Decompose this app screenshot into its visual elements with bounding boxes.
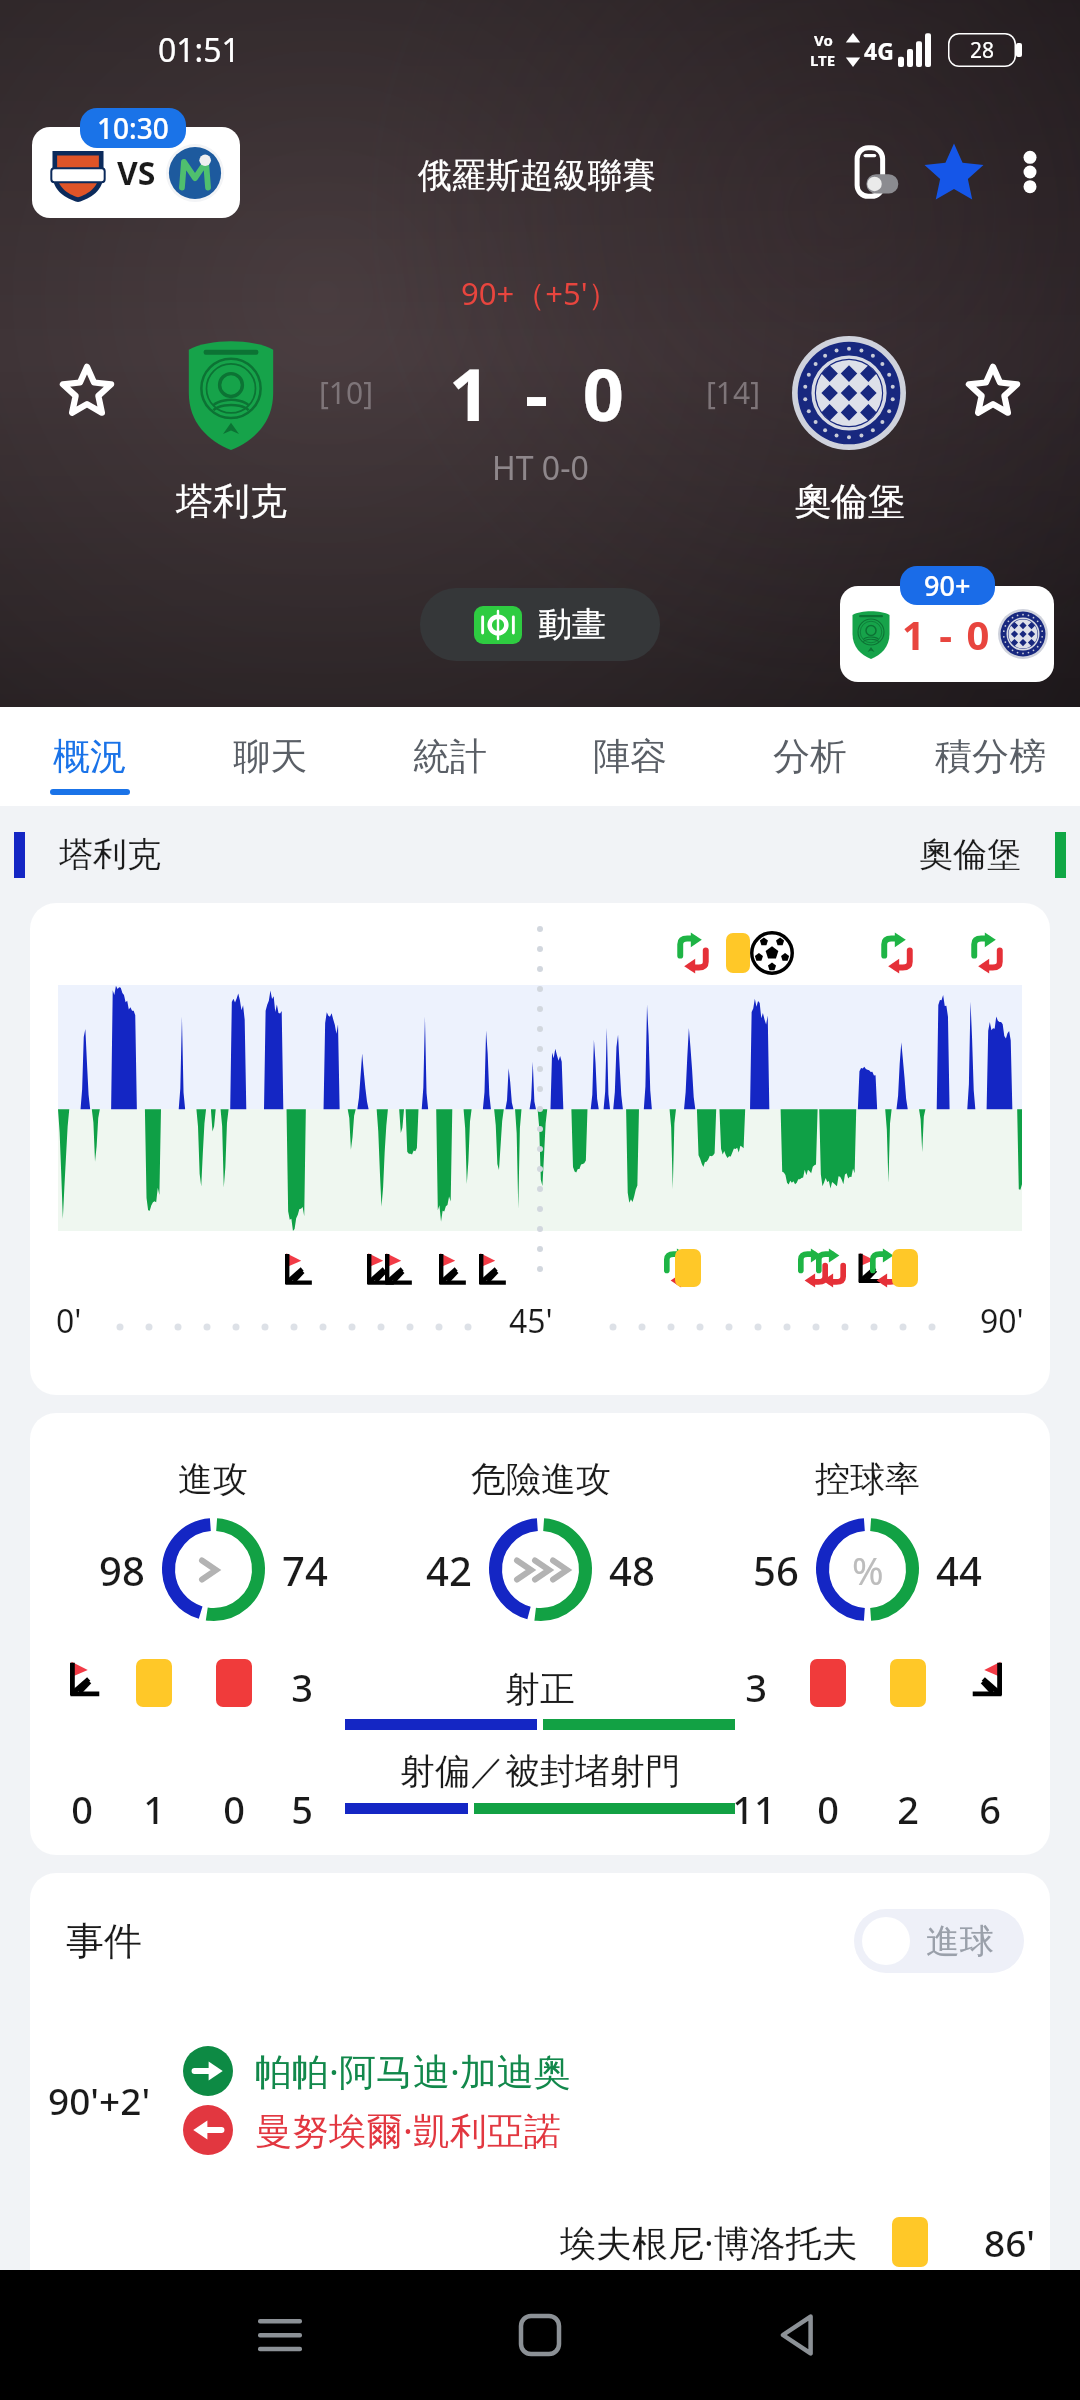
staticText: % (852, 1544, 884, 1596)
staticText: LTE (810, 50, 836, 70)
staticText: 控球率 (815, 1457, 920, 1501)
staticText: 1 - 0 (902, 607, 992, 661)
button[interactable]: Favourite home team (52, 355, 122, 425)
staticText: 聊天 (233, 733, 307, 780)
staticText: 射偏／被封堵射門 (400, 1749, 680, 1793)
staticText: 10:30 (97, 109, 169, 147)
staticText: 56 (753, 1543, 799, 1597)
button[interactable]: More options (992, 134, 1068, 210)
staticText: 統計 (413, 733, 487, 780)
staticText: 奧倫堡 (919, 833, 1021, 876)
staticText: 90' (980, 1299, 1024, 1343)
staticText: 44 (936, 1543, 982, 1597)
staticText: 概況 (53, 733, 127, 780)
button[interactable]: Favourite (916, 134, 992, 210)
button[interactable]: Favourite away team (958, 355, 1028, 425)
staticText: 分析 (773, 733, 847, 780)
staticText: 3 (282, 1661, 322, 1713)
button[interactable]: VS (32, 127, 240, 218)
staticText: 1 - 0 (449, 344, 632, 434)
staticText: 曼努埃爾·凱利亞諾 (255, 2104, 561, 2155)
staticText: 0' (56, 1299, 82, 1343)
staticText: 危險進攻 (471, 1457, 611, 1501)
button[interactable]: 統計 (360, 707, 540, 806)
staticText: 45' (509, 1299, 553, 1343)
staticText: [14] (706, 372, 761, 413)
staticText: 0 (58, 1783, 106, 1835)
staticText: 陣容 (593, 733, 667, 780)
button[interactable]: 進球 (854, 1909, 1024, 1973)
staticText: 0 (810, 1783, 846, 1835)
button[interactable]: Home (480, 2275, 600, 2395)
staticText: 埃夫根尼·博洛托夫 (560, 2218, 858, 2267)
staticText: [10] (319, 372, 374, 413)
staticText: 奧倫堡 (794, 478, 905, 525)
staticText: 事件 (66, 1917, 142, 1965)
button[interactable]: Keep screen on (840, 134, 916, 210)
staticText: 28 (970, 36, 995, 65)
button[interactable]: 陣容 (540, 707, 720, 806)
staticText: 俄羅斯超級聯賽 (418, 154, 656, 197)
staticText: 積分榜 (935, 733, 1046, 780)
staticText: 塔利克 (176, 478, 287, 525)
button[interactable]: 分析 (720, 707, 900, 806)
staticText: 86' (984, 2217, 1036, 2267)
staticText: 進球 (926, 1920, 994, 1963)
button[interactable]: 概況 (0, 707, 180, 806)
staticText: 動畫 (538, 603, 606, 646)
staticText: 5 (282, 1783, 322, 1835)
staticText: 90+ (924, 567, 971, 604)
button[interactable]: 聊天 (180, 707, 360, 806)
staticText: 射正 (505, 1667, 575, 1711)
staticText: 98 (99, 1543, 145, 1597)
staticText: 0 (216, 1783, 252, 1835)
staticText: 塔利克 (59, 833, 161, 876)
staticText: 2 (890, 1783, 926, 1835)
staticText: 90+（+5'） (461, 272, 619, 314)
button[interactable]: 積分榜 (900, 707, 1080, 806)
staticText: Vo (814, 30, 833, 50)
staticText: 01:51 (158, 28, 240, 72)
staticText: 11 (726, 1783, 782, 1835)
staticText: HT 0-0 (492, 446, 589, 490)
staticText: 1 (136, 1783, 172, 1835)
staticText: 帕帕·阿马迪·加迪奥 (255, 2045, 571, 2096)
button[interactable]: Recent apps (220, 2275, 340, 2395)
button[interactable]: Back (738, 2275, 858, 2395)
button[interactable]: 動畫 (420, 588, 660, 661)
staticText: VS (117, 151, 156, 195)
staticText: 90'+2' (48, 2075, 151, 2125)
button[interactable]: 1 - 0 (840, 586, 1054, 682)
staticText: 74 (282, 1543, 328, 1597)
staticText: 4G (864, 35, 894, 66)
staticText: 3 (736, 1661, 776, 1713)
staticText: 進攻 (178, 1457, 248, 1501)
staticText: 42 (426, 1543, 472, 1597)
staticText: 48 (609, 1543, 655, 1597)
staticText: 6 (966, 1783, 1014, 1835)
